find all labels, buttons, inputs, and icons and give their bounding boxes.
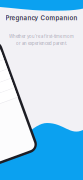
- staticText: or an experienced parent.: [16, 41, 67, 46]
- staticText: Pregnancy Companion: [5, 14, 77, 22]
- staticText: Whether you're a first-time mom: [9, 34, 74, 39]
